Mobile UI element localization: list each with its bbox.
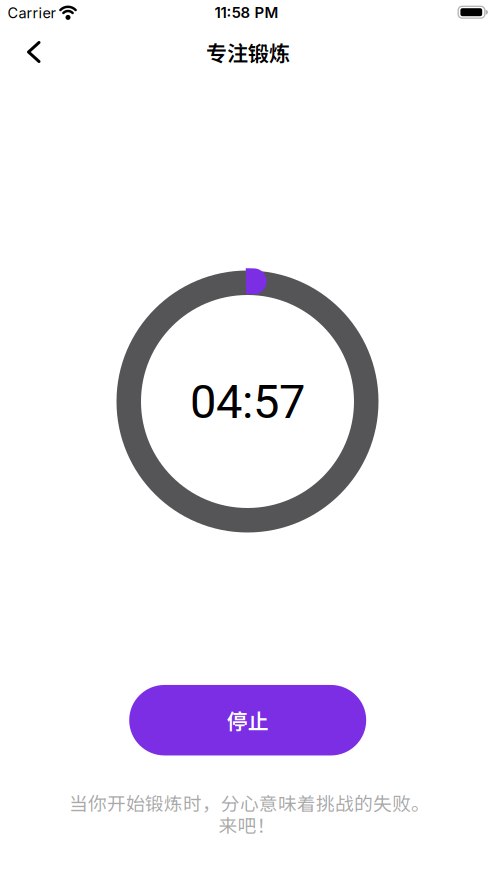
button[interactable]: 停止	[129, 685, 366, 755]
staticText: 11:58 PM	[214, 3, 278, 21]
staticText: 来吧！	[218, 811, 275, 838]
button[interactable]	[11, 30, 55, 74]
staticText: 停止	[227, 705, 269, 735]
staticText: 04:57	[190, 374, 305, 430]
staticText: Carrier	[7, 4, 55, 22]
staticText: 专注锻炼	[206, 37, 290, 67]
staticText: 当你开始锻炼时，分心意味着挑战的失败。	[69, 789, 430, 816]
